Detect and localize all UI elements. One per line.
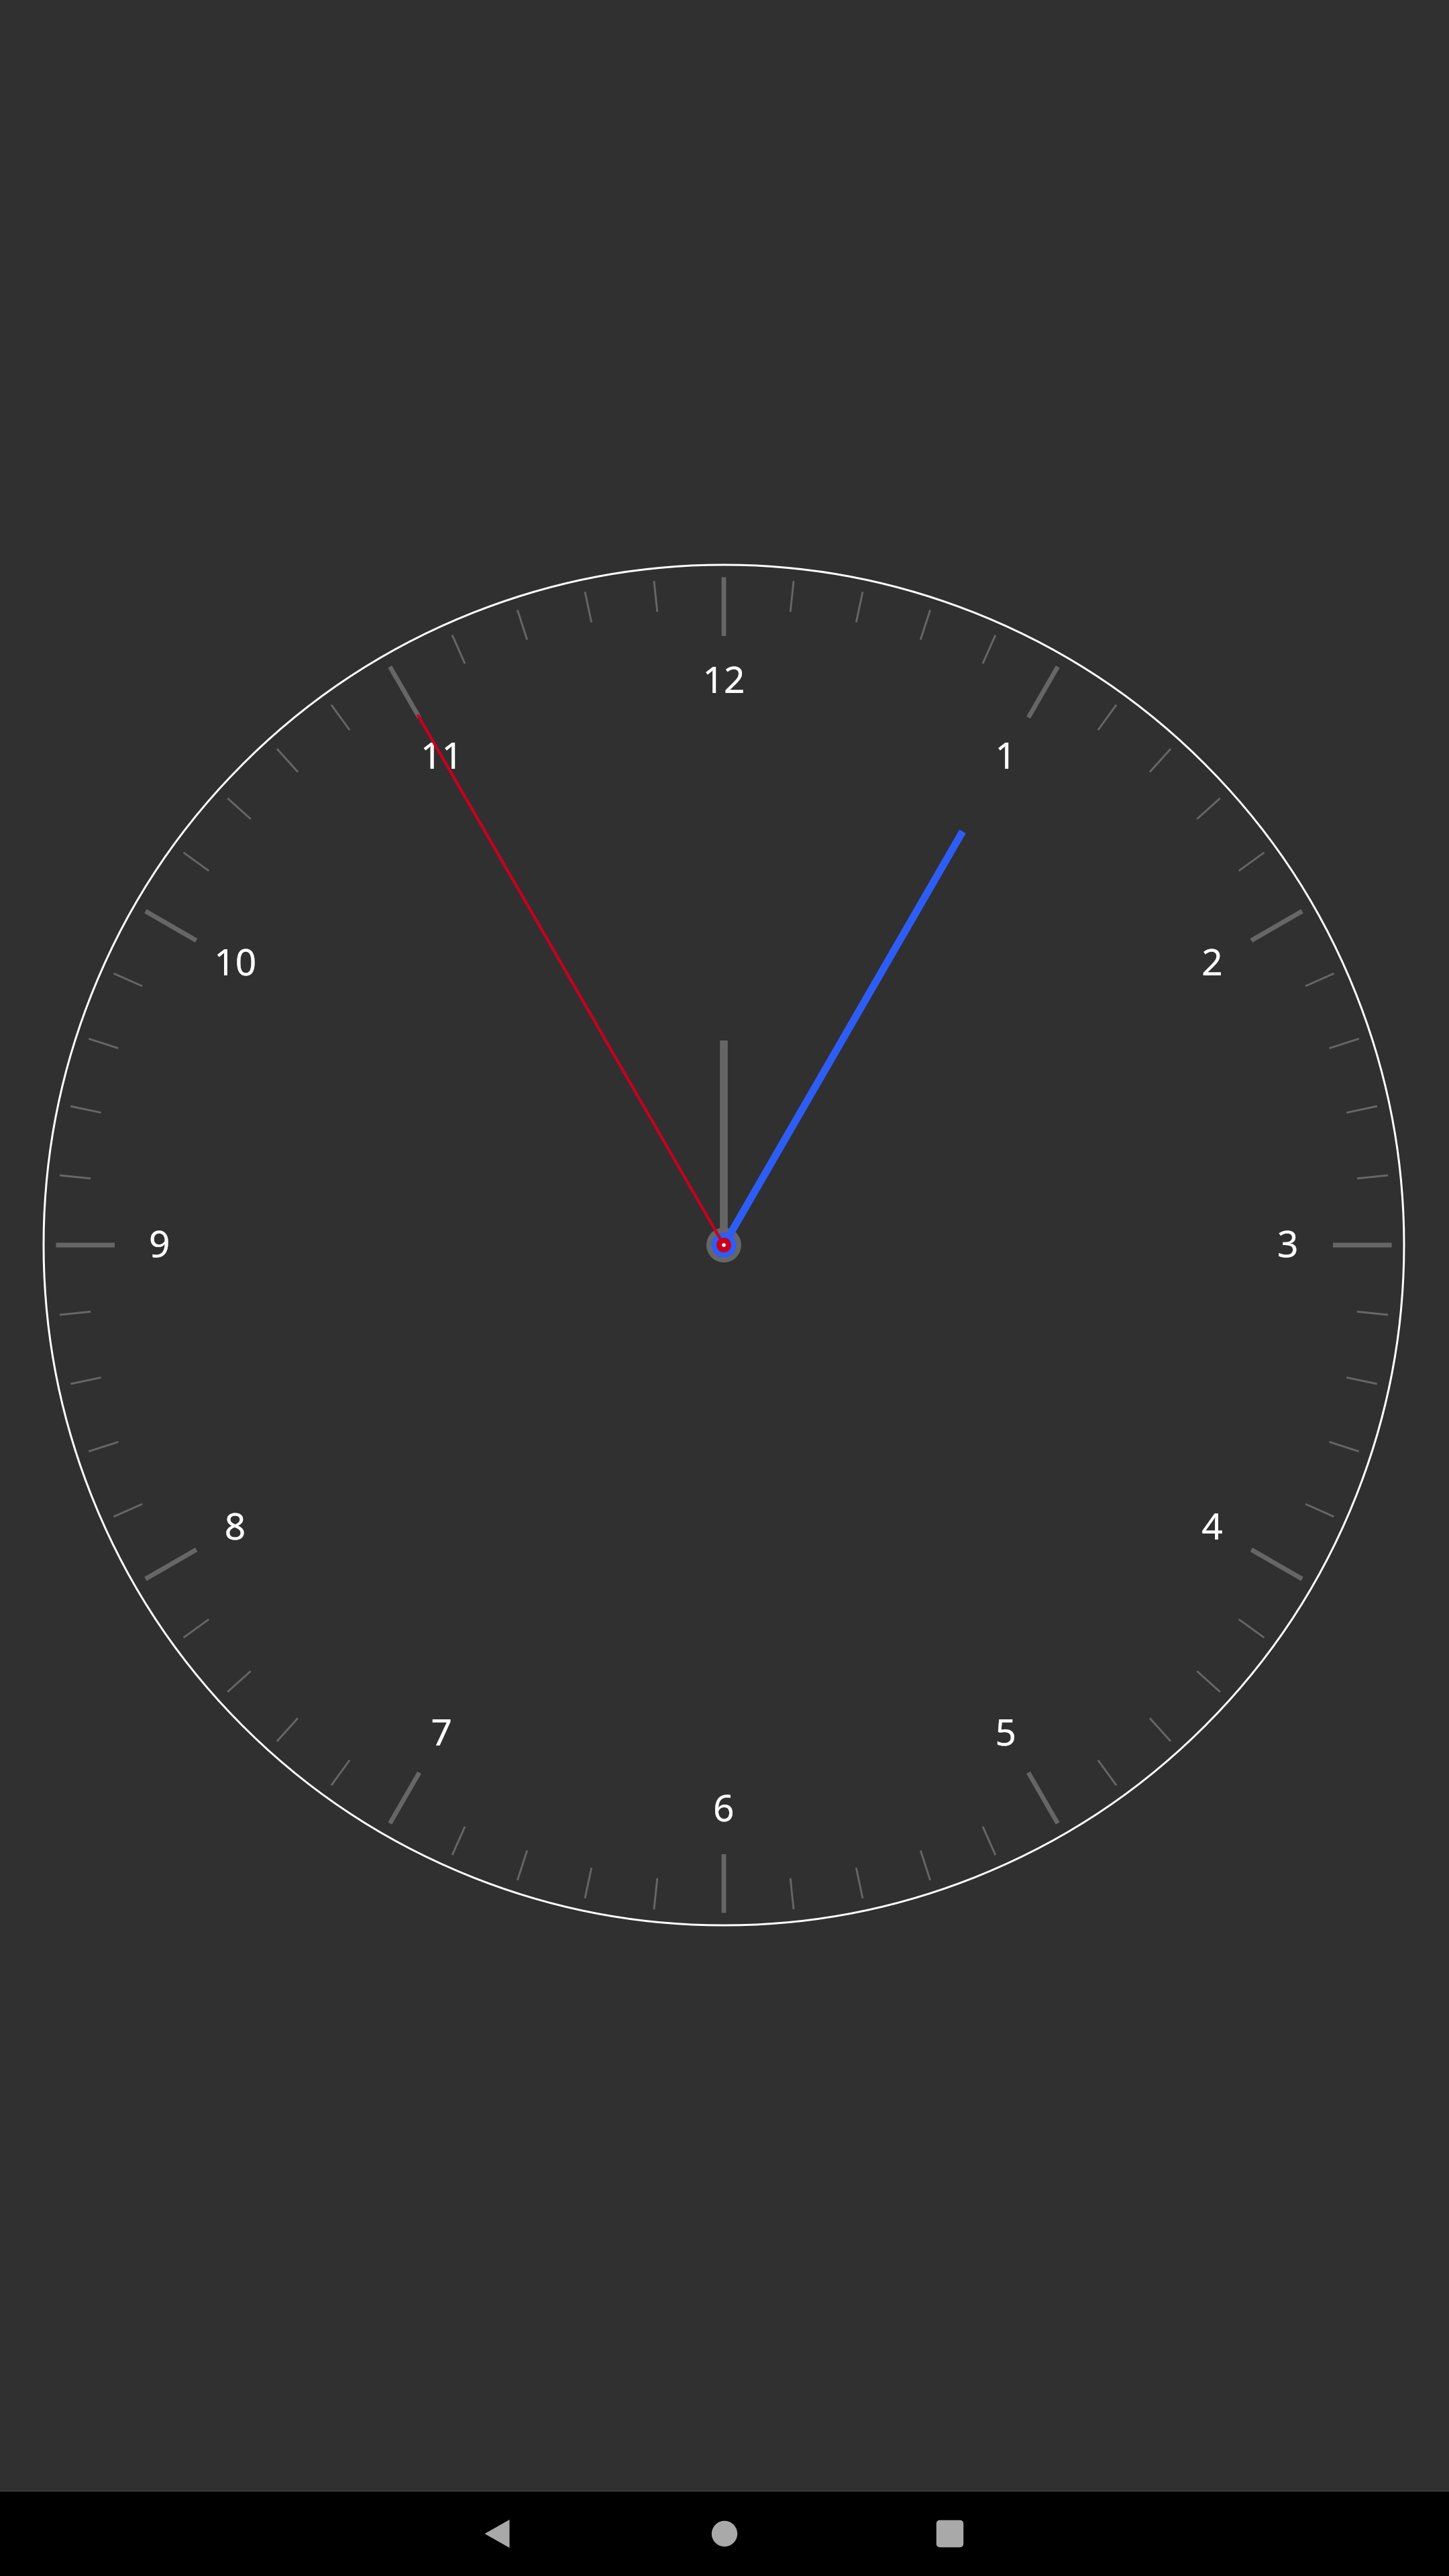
button[interactable]: Home — [640, 2491, 809, 2576]
button[interactable]: Back — [413, 2491, 582, 2576]
button[interactable]: Recent apps — [865, 2491, 1034, 2576]
